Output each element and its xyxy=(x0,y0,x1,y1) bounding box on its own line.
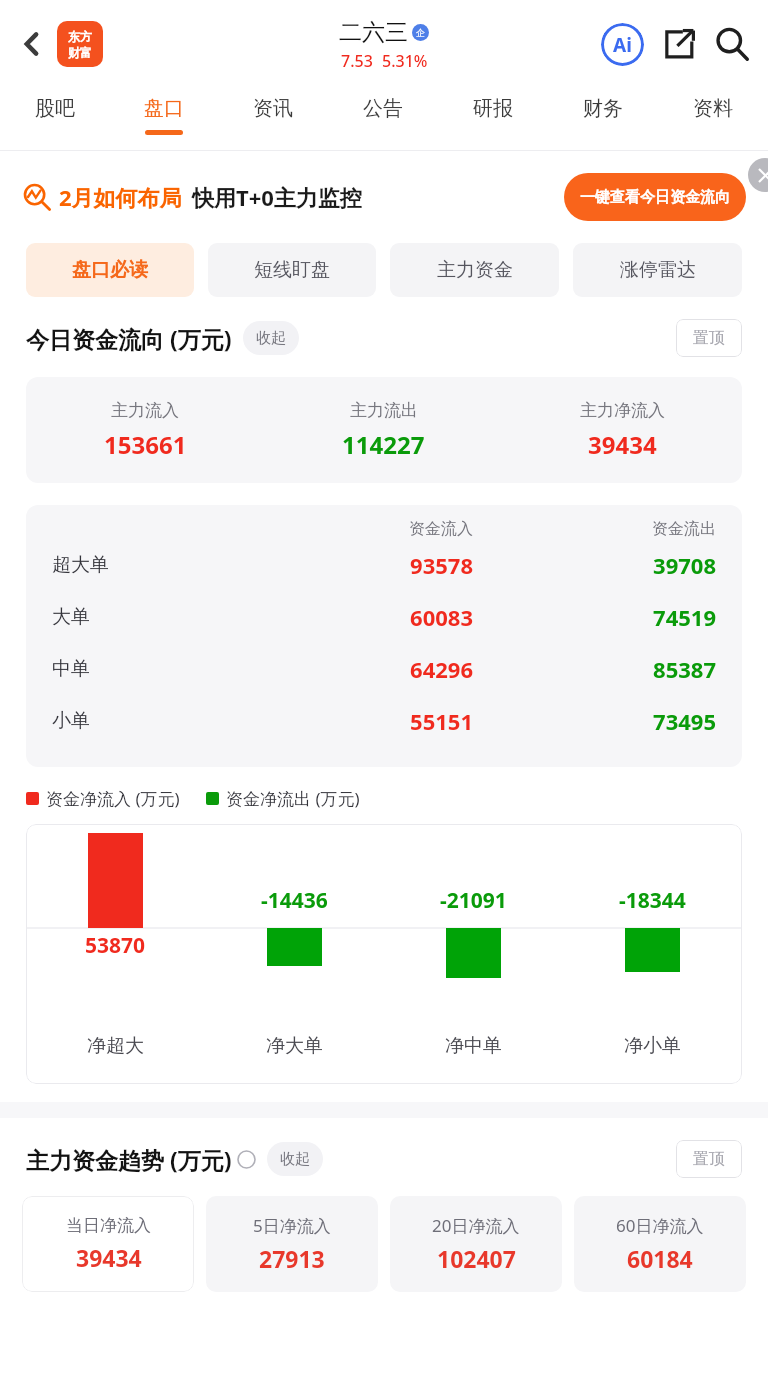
staticText: -14436 xyxy=(261,886,328,915)
staticText: 超大单 xyxy=(52,553,267,577)
staticText: 净大单 xyxy=(266,1034,323,1058)
staticText: 大单 xyxy=(52,605,267,629)
staticText: 今日资金流向 (万元) xyxy=(26,323,232,354)
staticText: 39708 xyxy=(510,550,716,580)
staticText: 53870 xyxy=(85,931,146,960)
button[interactable]: 5日净流入 xyxy=(206,1196,378,1292)
staticText: 净超大 xyxy=(87,1034,144,1058)
staticText: 5日净流入 xyxy=(253,1214,331,1237)
staticText: 收起 xyxy=(256,329,286,348)
button[interactable]: 资料 xyxy=(658,88,768,150)
other: Help xyxy=(237,1150,256,1169)
staticText: 85387 xyxy=(510,654,716,684)
button[interactable]: 研报 xyxy=(438,88,548,150)
staticText: 盘口 xyxy=(144,96,184,121)
staticText: 收起 xyxy=(280,1150,310,1169)
staticText: 财务 xyxy=(583,96,623,121)
staticText: 55151 xyxy=(267,706,473,736)
staticText: 股吧 xyxy=(35,96,75,121)
staticText: 64296 xyxy=(267,654,473,684)
button[interactable]: 20日净流入 xyxy=(390,1196,562,1292)
button[interactable]: 东方财富 xyxy=(57,21,103,67)
staticText: 主力资金趋势 (万元) xyxy=(26,1144,232,1175)
staticText: 主力资金 xyxy=(437,258,513,282)
button[interactable]: 一键查看今日资金流向 xyxy=(580,173,730,221)
staticText: 主力流入 xyxy=(111,400,179,421)
staticText: 东方 xyxy=(68,29,92,44)
button[interactable]: 当日净流入 xyxy=(22,1196,194,1292)
button[interactable]: 主力流入 xyxy=(26,377,742,483)
staticText: 73495 xyxy=(510,706,716,736)
button[interactable]: 收起 xyxy=(256,321,286,355)
staticText: 39434 xyxy=(588,428,657,461)
button[interactable]: 主力资金 xyxy=(390,243,559,297)
staticText: 资金净流出 (万元) xyxy=(226,787,360,810)
staticText: 153661 xyxy=(104,428,187,461)
button[interactable]: 置顶 xyxy=(676,319,742,357)
button[interactable]: Close xyxy=(748,158,768,192)
staticText: 净小单 xyxy=(624,1034,681,1058)
staticText: 短线盯盘 xyxy=(254,258,330,282)
button[interactable]: 公告 xyxy=(328,88,438,150)
staticText: 资金流出 xyxy=(510,519,716,539)
button[interactable]: 收起 xyxy=(280,1142,310,1176)
staticText: 盘口必读 xyxy=(72,258,148,282)
button[interactable]: 60日净流入 xyxy=(574,1196,746,1292)
staticText: -18344 xyxy=(619,886,686,915)
staticText: 资金净流入 (万元) xyxy=(46,787,180,810)
staticText: Ai xyxy=(613,32,632,58)
staticText: 资料 xyxy=(693,96,733,121)
staticText: 快用T+0主力监控 xyxy=(192,182,362,212)
staticText: 93578 xyxy=(267,550,473,580)
staticText: 置顶 xyxy=(693,328,725,348)
staticText: 74519 xyxy=(510,602,716,632)
button[interactable]: 财务 xyxy=(548,88,658,150)
button[interactable]: 短线盯盘 xyxy=(208,243,376,297)
staticText: 主力净流入 xyxy=(580,400,665,421)
button[interactable]: Back xyxy=(8,20,56,68)
staticText: 114227 xyxy=(342,428,425,461)
staticText: 39434 xyxy=(76,1242,142,1273)
staticText: 当日净流入 xyxy=(66,1215,151,1236)
staticText: 置顶 xyxy=(693,1149,725,1169)
button[interactable]: 资讯 xyxy=(218,88,328,150)
staticText: 27913 xyxy=(259,1243,325,1274)
staticText: 60083 xyxy=(267,602,473,632)
staticText: 60日净流入 xyxy=(616,1214,704,1237)
staticText: 净中单 xyxy=(445,1034,502,1058)
button[interactable]: 置顶 xyxy=(676,1140,742,1178)
staticText: 资讯 xyxy=(253,96,293,121)
staticText: 企 xyxy=(416,27,425,38)
staticText: 7.53 xyxy=(341,50,373,72)
staticText: 60184 xyxy=(627,1243,693,1274)
staticText: 公告 xyxy=(363,96,403,121)
staticText: 二六三 xyxy=(339,18,408,47)
button[interactable]: Search xyxy=(706,18,758,70)
staticText: 20日净流入 xyxy=(432,1214,520,1237)
staticText: 资金流入 xyxy=(267,519,473,539)
staticText: 小单 xyxy=(52,709,267,733)
button[interactable]: AI xyxy=(596,18,648,70)
staticText: 102407 xyxy=(437,1243,516,1274)
staticText: 2月如何布局 xyxy=(59,182,182,212)
staticText: 主力流出 xyxy=(350,400,418,421)
button[interactable]: 盘口必读 xyxy=(26,243,194,297)
button[interactable]: 盘口 xyxy=(109,88,218,150)
staticText: 中单 xyxy=(52,657,267,681)
staticText: 涨停雷达 xyxy=(620,258,696,282)
staticText: 5.31% xyxy=(382,50,428,72)
button[interactable]: 涨停雷达 xyxy=(573,243,742,297)
staticText: 一键查看今日资金流向 xyxy=(580,188,730,207)
staticText: -21091 xyxy=(440,886,507,915)
staticText: 财富 xyxy=(68,45,92,60)
button[interactable]: Share xyxy=(654,19,704,69)
staticText: 研报 xyxy=(473,96,513,121)
button[interactable]: 股吧 xyxy=(0,88,109,150)
